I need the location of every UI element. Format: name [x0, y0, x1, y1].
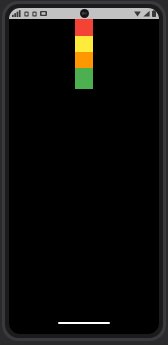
button[interactable]: Traffic light status: [75, 19, 93, 89]
